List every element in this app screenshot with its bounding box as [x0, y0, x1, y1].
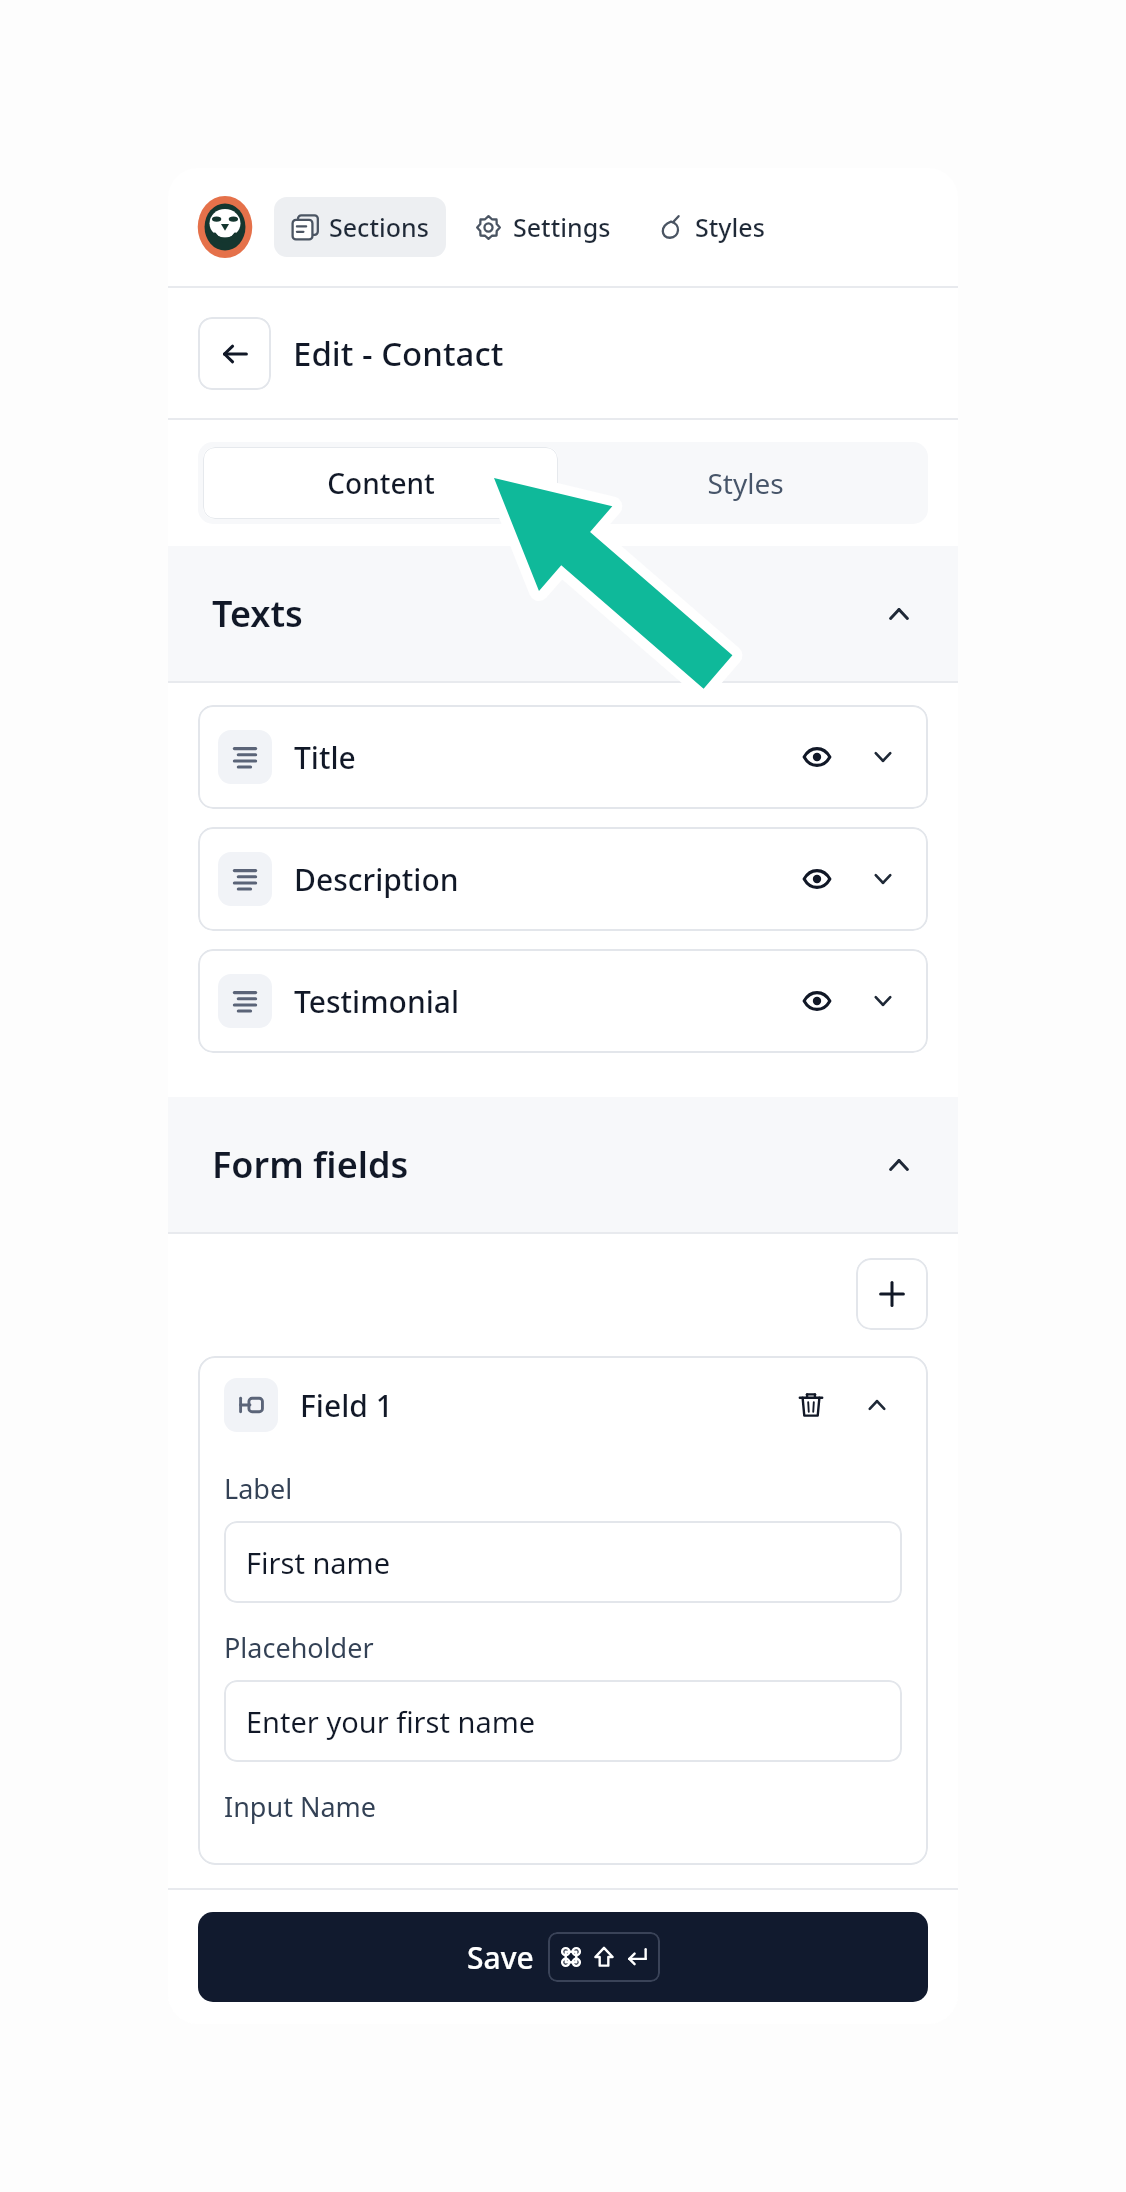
- button[interactable]: Collapse: [852, 1380, 902, 1430]
- button[interactable]: Field 1: [224, 1378, 902, 1432]
- staticText: Styles: [707, 464, 784, 502]
- staticText: Label: [224, 1470, 293, 1507]
- button[interactable]: Save: [198, 1912, 928, 2002]
- staticText: Texts: [212, 589, 303, 638]
- staticText: Input Name: [224, 1788, 377, 1825]
- button[interactable]: Home: [194, 196, 256, 258]
- button[interactable]: Toggle visibility: [792, 854, 842, 904]
- button[interactable]: Description: [198, 827, 928, 931]
- staticText: Form fields: [212, 1140, 409, 1189]
- staticText: Edit - Contact: [293, 331, 504, 376]
- button[interactable]: Expand: [858, 732, 908, 782]
- staticText: Save: [467, 1937, 534, 1978]
- staticText: Enter your first name: [246, 1702, 536, 1741]
- staticText: Description: [294, 859, 459, 900]
- button[interactable]: Toggle visibility: [792, 976, 842, 1026]
- button[interactable]: Texts: [168, 546, 958, 681]
- button[interactable]: Toggle visibility: [792, 732, 842, 782]
- staticText: Styles: [695, 210, 765, 244]
- staticText: Title: [294, 737, 356, 778]
- button[interactable]: Settings: [458, 197, 628, 257]
- button[interactable]: Testimonial: [198, 949, 928, 1053]
- staticText: Testimonial: [294, 981, 460, 1022]
- button[interactable]: Enter your first name: [224, 1680, 902, 1762]
- button[interactable]: First name: [224, 1521, 902, 1603]
- button[interactable]: Content: [203, 447, 558, 519]
- button[interactable]: Title: [198, 705, 928, 809]
- staticText: Settings: [513, 210, 611, 244]
- button[interactable]: Form fields: [168, 1097, 958, 1232]
- button[interactable]: Add field: [856, 1258, 928, 1330]
- staticText: Content: [327, 464, 435, 502]
- button[interactable]: Styles: [640, 197, 782, 257]
- staticText: Sections: [329, 210, 429, 244]
- button[interactable]: Delete field: [786, 1380, 836, 1430]
- button[interactable]: Expand: [858, 854, 908, 904]
- staticText: Placeholder: [224, 1629, 374, 1666]
- staticText: First name: [246, 1543, 391, 1582]
- button[interactable]: Styles: [568, 447, 923, 519]
- button[interactable]: Expand: [858, 976, 908, 1026]
- button[interactable]: Back: [198, 317, 271, 390]
- staticText: Field 1: [300, 1385, 393, 1426]
- button[interactable]: Sections: [274, 197, 446, 257]
